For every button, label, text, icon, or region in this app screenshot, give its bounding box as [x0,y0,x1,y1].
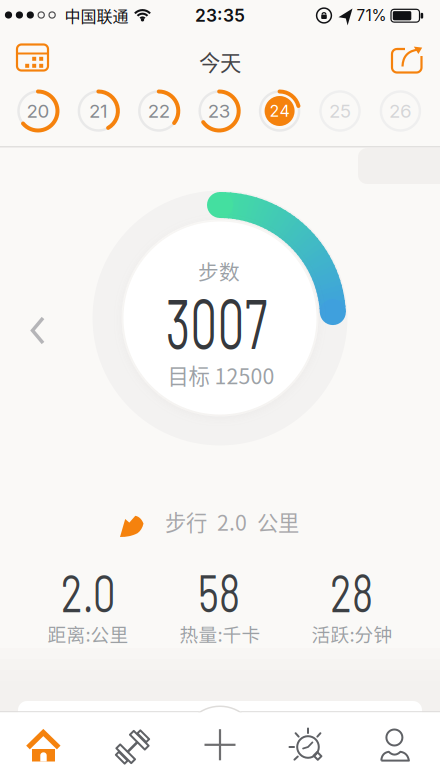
staticText: 71% [356,6,386,25]
button[interactable]: 21 [75,88,121,134]
button[interactable] [386,40,426,80]
staticText: 21 [89,100,108,122]
staticText: 24 [270,101,290,121]
button[interactable] [182,705,258,780]
staticText: 28 [324,560,379,623]
staticText: 目标 12500 [167,360,274,390]
button[interactable]: 20 [15,88,61,134]
button[interactable] [279,718,335,770]
staticText: 58 [192,560,246,623]
staticText: 中国联通 [64,4,128,27]
staticText: 2.0 [53,560,123,623]
staticText: 步数 [198,256,240,286]
staticText: 23 [208,100,231,122]
button[interactable]: 25 [317,88,363,134]
staticText: 25 [329,100,351,122]
button[interactable] [15,721,71,773]
staticText: 3007 [142,279,291,363]
staticText: 今天 [199,46,241,77]
button[interactable] [367,719,423,771]
button[interactable]: 24 [257,88,303,134]
button[interactable] [27,314,49,347]
staticText: 23:35 [195,5,245,26]
staticText: 26 [389,100,412,122]
staticText: 步行 2.0 公里 [165,506,299,537]
staticText: 活跃:分钟 [311,620,392,647]
button[interactable]: 26 [377,88,423,134]
staticText: 距离:公里 [47,620,128,647]
button[interactable]: 23 [196,88,242,134]
staticText: 22 [148,100,170,122]
button[interactable] [104,721,160,773]
button[interactable]: 22 [136,88,182,134]
button[interactable] [14,39,50,75]
staticText: 热量:千卡 [179,620,260,647]
staticText: 20 [26,100,49,122]
